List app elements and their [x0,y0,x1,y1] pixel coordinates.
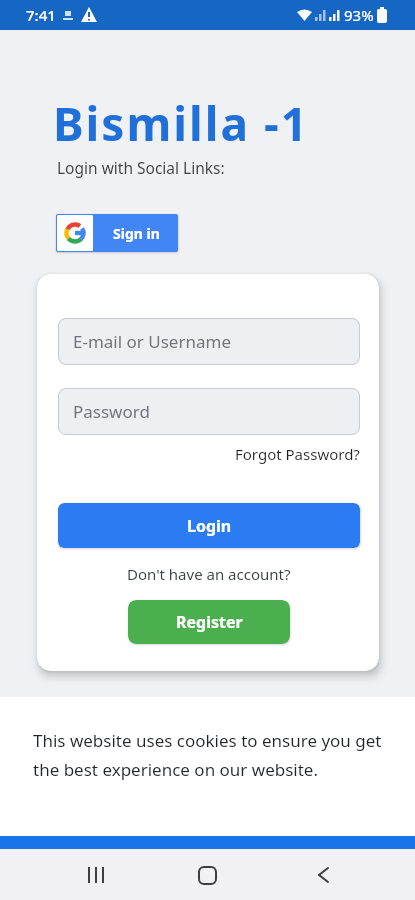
staticText: Don't have an account? [127,564,291,584]
button[interactable]: Password [58,388,360,435]
button[interactable] [191,862,224,888]
staticText: the best experience on our website. [33,758,319,781]
button[interactable]: Forgot Password? [235,444,360,464]
staticText: Sign in [113,224,160,243]
staticText: Password [73,400,150,423]
button[interactable]: E-mail or Username [58,318,360,365]
button[interactable] [80,862,112,888]
button[interactable] [308,862,339,888]
staticText: Login with Social Links: [57,157,225,178]
staticText: Bismilla -1 [53,92,310,155]
staticText: 7:41 [26,5,56,25]
staticText: E-mail or Username [73,330,231,353]
staticText: This website uses cookies to ensure you … [33,729,382,752]
staticText: Login [187,515,232,537]
button[interactable]: Sign in [56,214,178,252]
button[interactable]: Login [58,503,360,548]
staticText: 93% [344,5,374,25]
button[interactable]: Register [128,600,290,644]
staticText: Register [176,611,243,633]
